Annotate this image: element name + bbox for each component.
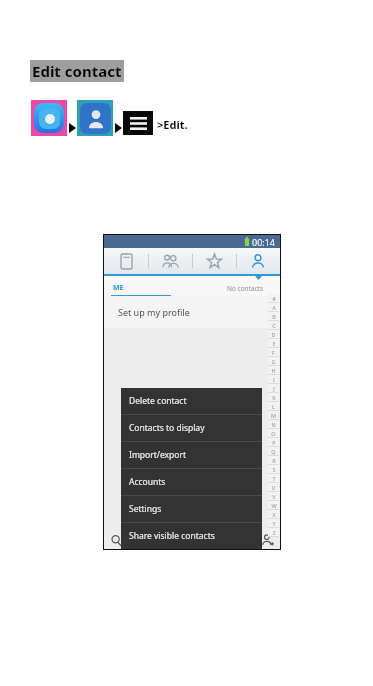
staticText: M [271, 412, 276, 419]
staticText: L [272, 403, 275, 410]
button[interactable]: Share visible contacts [121, 523, 262, 549]
button[interactable]: Settings app icon [31, 100, 67, 136]
button[interactable]: Tab [192, 248, 236, 274]
button[interactable]: Menu [123, 111, 153, 135]
staticText: D [271, 331, 276, 338]
staticText: E [272, 340, 276, 347]
button[interactable]: Tab [148, 248, 192, 274]
button[interactable]: Add contact [260, 532, 276, 548]
staticText: X [272, 511, 276, 518]
button[interactable]: Tab [236, 248, 280, 274]
staticText: N [271, 421, 276, 428]
button[interactable]: Delete contact [121, 388, 262, 414]
button[interactable]: Contacts app icon [77, 100, 113, 136]
staticText: Z [272, 529, 276, 536]
staticText: J [273, 385, 275, 392]
staticText: G [271, 358, 276, 365]
staticText: Accounts [129, 476, 166, 488]
staticText: 00:14 [252, 236, 276, 248]
staticText: K [272, 394, 276, 401]
staticText: # [272, 295, 276, 302]
staticText: F [272, 349, 275, 356]
button[interactable]: Settings [121, 496, 262, 522]
button[interactable]: Search [108, 532, 124, 548]
staticText: Settings [129, 503, 162, 515]
button[interactable]: Contacts to display [121, 415, 262, 441]
staticText: W [271, 502, 277, 509]
staticText: Y [272, 520, 276, 527]
staticText: O [271, 430, 276, 437]
button[interactable]: Tab [104, 248, 148, 274]
staticText: >Edit. [157, 117, 188, 132]
staticText: A [272, 304, 276, 311]
staticText: H [271, 367, 276, 374]
staticText: Set up my profile [118, 306, 190, 318]
staticText: Delete contact [129, 395, 187, 407]
staticText: U [271, 484, 276, 491]
staticText: T [272, 475, 276, 482]
staticText: Import/export [129, 449, 187, 461]
button[interactable]: Accounts [121, 469, 262, 495]
staticText: Q [271, 448, 276, 455]
staticText: Share visible contacts [129, 530, 215, 542]
staticText: R [272, 457, 276, 464]
staticText: ME [113, 283, 124, 293]
staticText: P [272, 439, 276, 446]
staticText: V [272, 493, 276, 500]
staticText: S [272, 466, 276, 473]
staticText: C [272, 322, 276, 329]
staticText: No contacts [227, 284, 264, 293]
button[interactable]: Set up my profile [104, 296, 280, 328]
button[interactable]: Import/export [121, 442, 262, 468]
staticText: Contacts to display [129, 422, 205, 434]
staticText: B [272, 313, 276, 320]
staticText: Edit contact [32, 61, 122, 81]
button[interactable]: Alphabet index [268, 294, 279, 537]
staticText: I [273, 376, 275, 383]
